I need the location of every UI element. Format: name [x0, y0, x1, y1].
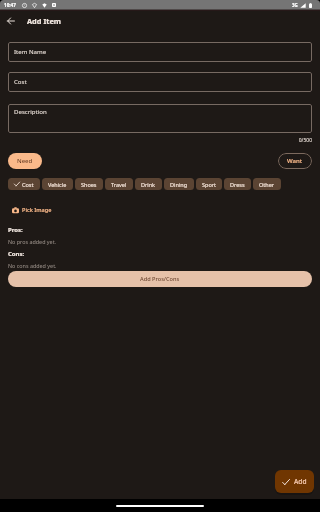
button[interactable]: Drink — [135, 178, 162, 190]
staticText: 10:47 — [4, 2, 16, 8]
button[interactable]: Back — [3, 13, 19, 29]
button[interactable]: Add Pros/Cons — [8, 271, 312, 287]
staticText: No pros added yet. — [8, 238, 57, 245]
button[interactable]: Pick Image — [8, 204, 52, 216]
staticText: Pick Image — [22, 206, 52, 214]
button[interactable]: Dining — [164, 178, 194, 190]
staticText: Cons: — [8, 250, 25, 258]
staticText: Need — [17, 157, 33, 165]
staticText: 0/500 — [8, 137, 312, 144]
staticText: Shoes — [81, 181, 97, 188]
staticText: No cons added yet. — [8, 262, 57, 269]
staticText: Add Item — [27, 16, 62, 26]
staticText: Cost — [14, 77, 27, 85]
button[interactable]: Item Name — [8, 42, 312, 62]
staticText: Item Name — [14, 47, 47, 55]
staticText: 3G — [292, 2, 298, 8]
staticText: Drink — [141, 181, 156, 188]
staticText: Description — [14, 107, 47, 115]
button[interactable]: Vehicle — [42, 178, 73, 190]
button[interactable]: Shoes — [75, 178, 103, 190]
button[interactable]: Other — [253, 178, 281, 190]
staticText: Add — [294, 477, 307, 486]
staticText: Dress — [230, 181, 245, 188]
button[interactable]: Dress — [224, 178, 251, 190]
button[interactable]: Travel — [105, 178, 133, 190]
button[interactable]: Want — [278, 153, 312, 169]
button[interactable]: Sport — [196, 178, 222, 190]
staticText: Other — [259, 181, 275, 188]
staticText: Dining — [170, 181, 188, 188]
staticText: Add Pros/Cons — [140, 275, 180, 283]
button[interactable]: Cost — [8, 72, 312, 92]
staticText: Sport — [202, 181, 216, 188]
button[interactable]: Cost — [8, 178, 40, 190]
staticText: Cost — [22, 181, 34, 188]
staticText: Pros: — [8, 226, 23, 234]
button[interactable]: Need — [8, 153, 42, 169]
button[interactable]: Add — [275, 470, 314, 493]
staticText: Vehicle — [48, 181, 67, 188]
button[interactable]: Description — [8, 104, 312, 133]
staticText: Want — [287, 157, 303, 165]
staticText: Travel — [111, 181, 127, 188]
